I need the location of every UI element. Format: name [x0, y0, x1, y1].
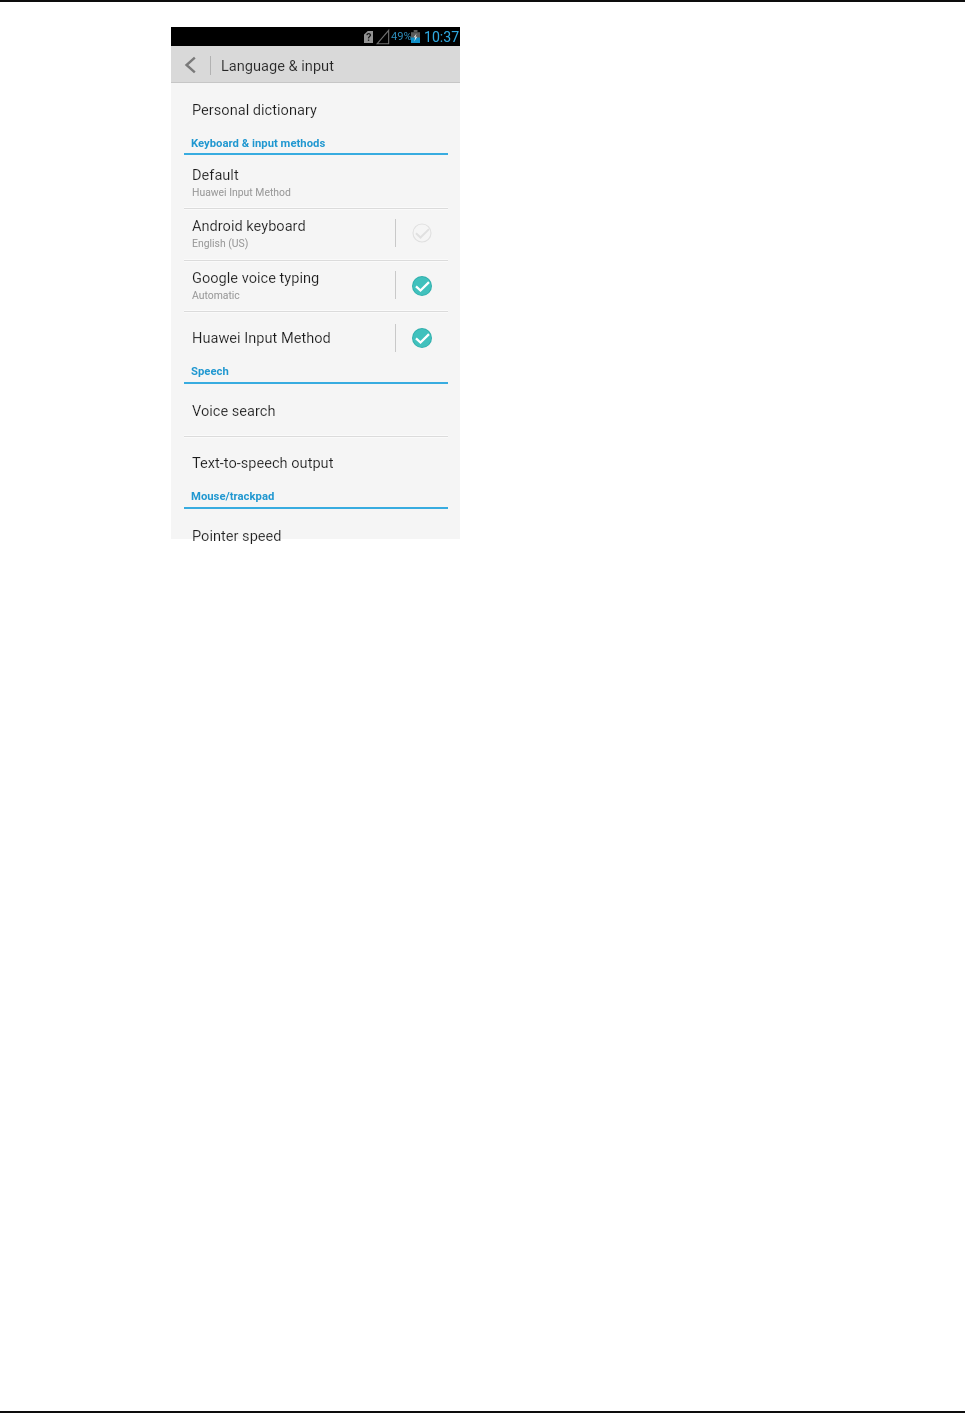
button[interactable]: Disabled — [399, 211, 444, 255]
button[interactable]: Text-to-speech output — [171, 437, 460, 488]
staticText: Mouse/trackpad — [191, 490, 275, 503]
staticText: Speech — [191, 365, 229, 378]
staticText: Automatic — [192, 289, 240, 301]
button[interactable]: Android keyboard — [171, 209, 460, 260]
staticText: Android keyboard — [192, 217, 306, 234]
button[interactable]: Back — [171, 46, 209, 82]
button[interactable]: Voice search — [171, 386, 460, 436]
button[interactable]: Enabled — [399, 264, 444, 308]
staticText: Language & input — [221, 57, 334, 74]
button[interactable]: Enabled — [399, 316, 444, 360]
staticText: Keyboard & input methods — [191, 137, 326, 150]
staticText: English (US) — [192, 237, 249, 249]
staticText: Pointer speed — [192, 527, 282, 544]
button[interactable]: Pointer speed — [171, 510, 460, 539]
staticText: ? — [366, 31, 372, 43]
button[interactable]: Google voice typing — [171, 260, 460, 311]
staticText: Huawei Input Method — [192, 186, 291, 198]
staticText: Default — [192, 166, 239, 183]
button[interactable]: Default — [171, 157, 460, 208]
button[interactable]: Personal dictionary — [171, 84, 460, 132]
staticText: Huawei Input Method — [192, 329, 331, 346]
button[interactable]: Huawei Input Method — [171, 312, 460, 358]
staticText: 49% — [391, 30, 412, 43]
staticText: Text-to-speech output — [192, 454, 334, 471]
staticText: Google voice typing — [192, 269, 320, 286]
staticText: 10:37 — [424, 29, 460, 46]
staticText: Personal dictionary — [192, 101, 317, 118]
staticText: Voice search — [192, 402, 276, 419]
